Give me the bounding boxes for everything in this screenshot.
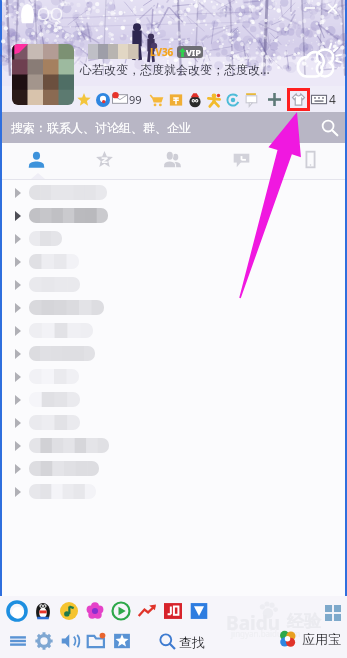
button[interactable]: Groups bbox=[138, 143, 207, 179]
button[interactable]: Files bbox=[83, 628, 109, 654]
button[interactable] bbox=[2, 388, 345, 411]
button[interactable]: Volume bbox=[57, 628, 83, 654]
button[interactable] bbox=[2, 457, 345, 480]
button[interactable]: Add bbox=[265, 90, 283, 108]
button[interactable]: 心若改变，态度就会改变；态度改... bbox=[80, 61, 270, 77]
staticText: 查找 bbox=[179, 634, 205, 650]
button[interactable]: My device bbox=[276, 143, 345, 179]
staticText: Baidu bbox=[226, 610, 281, 636]
button[interactable]: Music bbox=[56, 598, 82, 624]
button[interactable]: JD bbox=[160, 598, 186, 624]
other: Search bbox=[322, 120, 338, 136]
staticText: 应用宝 bbox=[302, 631, 341, 647]
button[interactable]: Favorites bbox=[109, 628, 135, 654]
button[interactable]: Menu bbox=[5, 628, 31, 654]
button[interactable]: All apps bbox=[325, 605, 341, 621]
button[interactable]: 360 Browser bbox=[4, 598, 30, 624]
button[interactable]: Wallet bbox=[166, 90, 185, 109]
button[interactable] bbox=[2, 480, 345, 503]
button[interactable]: Feedback bbox=[242, 90, 261, 109]
button[interactable]: Discussions bbox=[207, 143, 276, 179]
button[interactable] bbox=[2, 227, 345, 250]
button[interactable]: Security bbox=[186, 598, 212, 624]
button[interactable]: Friends bbox=[204, 90, 223, 109]
button[interactable]: Keyboard bbox=[311, 93, 327, 106]
button[interactable] bbox=[2, 365, 345, 388]
staticText: 经验 bbox=[287, 611, 321, 632]
button[interactable] bbox=[2, 181, 345, 204]
button[interactable]: Settings bbox=[31, 628, 57, 654]
button[interactable]: Dress up bbox=[290, 91, 307, 108]
button[interactable]: QQ bbox=[30, 598, 56, 624]
button[interactable]: Weather bbox=[297, 42, 339, 84]
button[interactable] bbox=[2, 434, 345, 457]
staticText: VIP bbox=[186, 46, 201, 58]
button[interactable] bbox=[2, 319, 345, 342]
button[interactable]: Stocks bbox=[134, 598, 160, 624]
staticText: 4 bbox=[329, 91, 336, 107]
staticText: QQ bbox=[37, 2, 64, 25]
button[interactable]: Video player bbox=[108, 598, 134, 624]
button[interactable]: 应用宝 bbox=[279, 630, 341, 647]
button[interactable] bbox=[2, 250, 345, 273]
staticText: LV36 bbox=[150, 45, 174, 59]
button[interactable]: Minimize bbox=[299, 0, 321, 16]
button[interactable]: Mail bbox=[112, 89, 142, 109]
button[interactable]: 搜索：联系人、讨论组、群、企业 bbox=[2, 112, 345, 143]
button[interactable]: Star bbox=[74, 90, 93, 109]
button[interactable]: Close bbox=[321, 0, 343, 16]
button[interactable]: Pet bbox=[185, 90, 204, 109]
staticText: 99 bbox=[129, 92, 142, 107]
staticText: jingyan.baidu.com bbox=[231, 628, 301, 639]
button[interactable]: Flower app bbox=[82, 598, 108, 624]
button[interactable]: Shopping bbox=[147, 90, 166, 109]
button[interactable] bbox=[2, 342, 345, 365]
button[interactable]: Profile avatar bbox=[12, 44, 74, 105]
staticText: 搜索：联系人、讨论组、群、企业 bbox=[11, 120, 191, 135]
button[interactable] bbox=[2, 411, 345, 434]
button[interactable] bbox=[2, 296, 345, 319]
button[interactable]: 查找 bbox=[159, 633, 205, 650]
button[interactable]: Browser bbox=[93, 90, 112, 109]
button[interactable]: Music bbox=[223, 90, 242, 109]
button[interactable] bbox=[2, 204, 345, 227]
button[interactable]: Contacts bbox=[2, 143, 70, 179]
button[interactable] bbox=[2, 273, 345, 296]
button[interactable]: Favorites bbox=[70, 143, 138, 179]
